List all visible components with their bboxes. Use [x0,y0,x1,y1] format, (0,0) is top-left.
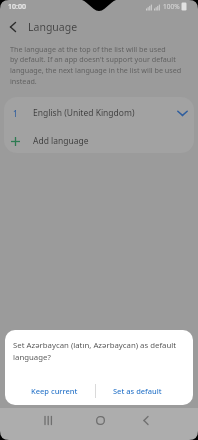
button[interactable] [36,408,60,432]
staticText: Add language [33,135,89,147]
button[interactable]: Add language [0,128,198,154]
staticText: English (United Kingdom) [33,107,135,119]
button[interactable]: Keep current [13,377,95,405]
button[interactable] [88,408,112,432]
button[interactable] [4,18,22,36]
button[interactable]: 1 [0,100,198,126]
staticText: 1 [13,108,18,119]
button[interactable]: Set as default [96,377,178,405]
staticText: 100% [163,2,180,11]
staticText: The language at the top of the list will… [10,44,182,86]
button[interactable] [134,408,158,432]
staticText: Set Azərbaycan (latın, Azərbaycan) as de… [13,340,177,362]
staticText: Set as default [113,386,162,396]
staticText: Language [28,20,78,34]
staticText: 10:00 [8,2,26,12]
staticText: Keep current [31,386,78,396]
